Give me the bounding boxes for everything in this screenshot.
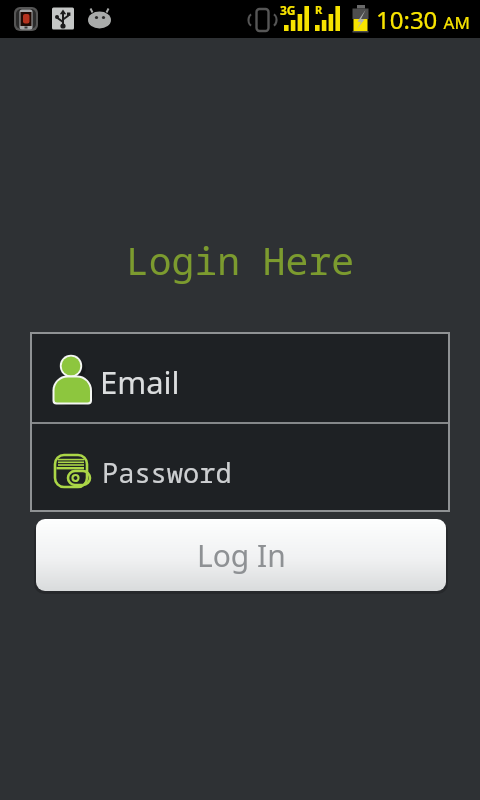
staticText: Login Here	[126, 234, 355, 286]
staticText: R	[315, 2, 323, 17]
staticText: Log In	[197, 535, 286, 576]
staticText: Password	[102, 454, 232, 491]
staticText: 10:30 AM	[376, 3, 470, 36]
button[interactable]: Log In	[36, 519, 446, 591]
staticText: Email	[100, 361, 180, 403]
staticText: 3G	[280, 2, 296, 18]
button[interactable]: Email	[30, 332, 450, 422]
button[interactable]: Password	[30, 424, 450, 512]
